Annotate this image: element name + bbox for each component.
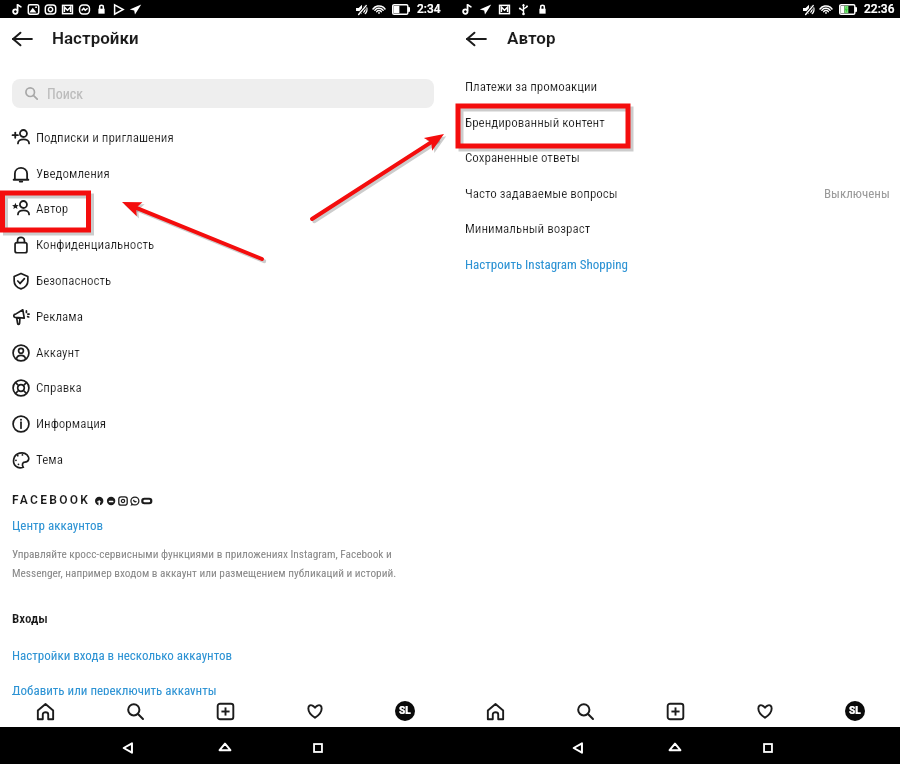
staticText: Входы (12, 611, 48, 626)
button[interactable]: Настроить Instagram Shopping (450, 247, 900, 282)
staticText: 2:34 (417, 2, 441, 16)
staticText: SL (399, 705, 411, 717)
staticText: Справка (36, 380, 82, 395)
staticText: Автор (507, 28, 556, 48)
staticText: Часто задаваемые вопросы (465, 186, 618, 201)
button[interactable]: Платежи за промоакции (450, 69, 900, 104)
staticText: Безопасность (36, 273, 112, 288)
button[interactable]: Home (450, 695, 540, 727)
button[interactable]: Подписки и приглашения (0, 120, 450, 155)
button[interactable]: Сохраненные ответы (450, 140, 900, 175)
button[interactable]: Profile (360, 695, 450, 727)
staticText: Автор (36, 201, 69, 216)
staticText: Настроить Instagram Shopping (465, 257, 628, 272)
button[interactable]: Аккаунт (0, 335, 450, 370)
button[interactable]: Брендированный контент (450, 105, 900, 140)
button[interactable]: Activity (270, 695, 360, 727)
staticText: FACEBOOK (12, 493, 91, 507)
staticText: Настройки (52, 28, 139, 48)
button[interactable]: Search (540, 695, 630, 727)
staticText: Подписки и приглашения (36, 130, 174, 145)
staticText: Выключены (824, 186, 890, 201)
staticText: Поиск (47, 86, 84, 102)
button[interactable]: Автор (0, 191, 450, 226)
button[interactable]: Справка (0, 370, 450, 405)
button[interactable]: New post (180, 695, 270, 727)
button[interactable]: Home (0, 695, 90, 727)
staticText: Конфиденциальность (36, 237, 155, 252)
staticText: Минимальный возраст (465, 221, 591, 236)
button[interactable]: Поиск (12, 79, 434, 108)
button[interactable]: Минимальный возраст (450, 211, 900, 246)
button[interactable]: Recent apps (309, 739, 327, 757)
staticText: Управляйте кросс-сервисными функциями в … (12, 548, 397, 580)
staticText: Реклама (36, 309, 83, 324)
button[interactable]: Recent apps (759, 739, 777, 757)
button[interactable]: Back (463, 26, 489, 52)
button[interactable]: Home (216, 739, 234, 757)
button[interactable]: Настройки входа в несколько аккаунтов (12, 648, 233, 663)
button[interactable]: Тема (0, 442, 450, 477)
staticText: Платежи за промоакции (465, 79, 598, 94)
button[interactable]: Добавить или переключить аккаунты (12, 683, 217, 698)
button[interactable]: Безопасность (0, 263, 450, 298)
staticText: Брендированный контент (465, 115, 605, 130)
button[interactable]: Back (9, 26, 35, 52)
staticText: Сохраненные ответы (465, 150, 580, 165)
button[interactable]: Реклама (0, 299, 450, 334)
button[interactable]: Конфиденциальность (0, 227, 450, 262)
staticText: Аккаунт (36, 345, 80, 360)
staticText: Информация (36, 416, 107, 431)
button[interactable]: Back (569, 739, 587, 757)
staticText: Уведомления (36, 166, 110, 181)
button[interactable]: Центр аккаунтов (12, 518, 104, 533)
staticText: 22:36 (864, 2, 895, 16)
button[interactable]: Часто задаваемые вопросы (450, 176, 900, 211)
staticText: SL (849, 705, 861, 717)
button[interactable]: Home (666, 739, 684, 757)
button[interactable]: Информация (0, 406, 450, 441)
button[interactable]: Search (90, 695, 180, 727)
staticText: Тема (36, 452, 63, 467)
button[interactable]: Back (119, 739, 137, 757)
button[interactable]: Activity (720, 695, 810, 727)
button[interactable]: New post (630, 695, 720, 727)
button[interactable]: Уведомления (0, 156, 450, 191)
button[interactable]: Profile (810, 695, 900, 727)
